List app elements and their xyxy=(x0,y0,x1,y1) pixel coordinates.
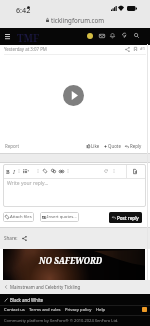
staticText: Like xyxy=(91,143,100,149)
staticText: Quote xyxy=(108,143,121,149)
button[interactable]: Report xyxy=(5,143,19,149)
staticText: Write your reply... xyxy=(7,180,49,187)
staticText: Share: xyxy=(4,235,18,241)
button[interactable]: Alerts xyxy=(108,31,117,40)
button[interactable]: List xyxy=(22,166,30,176)
button[interactable]: Account xyxy=(85,31,94,40)
staticText: ticklingforum.com xyxy=(51,16,105,24)
button[interactable]: Preview xyxy=(131,166,139,176)
button[interactable]: Emoji xyxy=(57,166,65,176)
button[interactable]: Insert image xyxy=(49,166,57,176)
staticText: Reply xyxy=(130,143,142,149)
button[interactable]: B xyxy=(6,168,10,175)
button[interactable]: Menu xyxy=(2,31,12,41)
button[interactable]: Reply xyxy=(125,143,142,149)
button[interactable]: Post reply xyxy=(112,212,139,223)
staticText: #1 xyxy=(140,46,146,52)
button[interactable]: Black and White xyxy=(4,295,150,304)
staticText: Insert quotes... xyxy=(47,214,77,220)
button[interactable]: Terms and rules xyxy=(29,307,61,313)
button[interactable]: RSS feed xyxy=(142,307,147,312)
button[interactable]: Search xyxy=(132,31,141,40)
button[interactable]: Insert link xyxy=(41,166,49,176)
button[interactable]: Help xyxy=(96,307,106,313)
staticText: Community platform by XenForo® © 2010-20… xyxy=(4,318,119,323)
button[interactable]: Insert quotes... xyxy=(42,212,77,222)
staticText: NO SAFEWORD xyxy=(39,255,103,266)
button[interactable]: Share post xyxy=(123,45,131,53)
button[interactable]: Bookmark post xyxy=(131,45,139,53)
button[interactable]: I xyxy=(13,168,15,175)
button[interactable]: Bookmarks xyxy=(120,31,129,40)
button[interactable]: Play video xyxy=(63,85,84,106)
staticText: Post reply xyxy=(117,215,139,221)
button[interactable]: Inbox xyxy=(97,31,106,40)
button[interactable]: Share xyxy=(21,235,28,242)
staticText: Black and White xyxy=(10,297,44,303)
staticText: Mainstream and Celebrity Tickling xyxy=(10,284,81,290)
button[interactable]: Mainstream and Celebrity Tickling xyxy=(5,280,150,294)
staticText: Yesterday at 3:07 PM xyxy=(4,46,47,52)
staticText: Attach files xyxy=(10,214,32,220)
button[interactable]: Undo xyxy=(102,166,110,176)
staticText: TMF xyxy=(17,31,40,45)
button[interactable]: Contact us xyxy=(4,307,25,313)
button[interactable]: Attach files xyxy=(5,212,32,222)
button[interactable]: Quote xyxy=(104,143,121,149)
button[interactable]: Privacy policy xyxy=(65,307,92,313)
staticText: 6:42 xyxy=(16,5,31,15)
button[interactable]: Like xyxy=(87,143,100,149)
